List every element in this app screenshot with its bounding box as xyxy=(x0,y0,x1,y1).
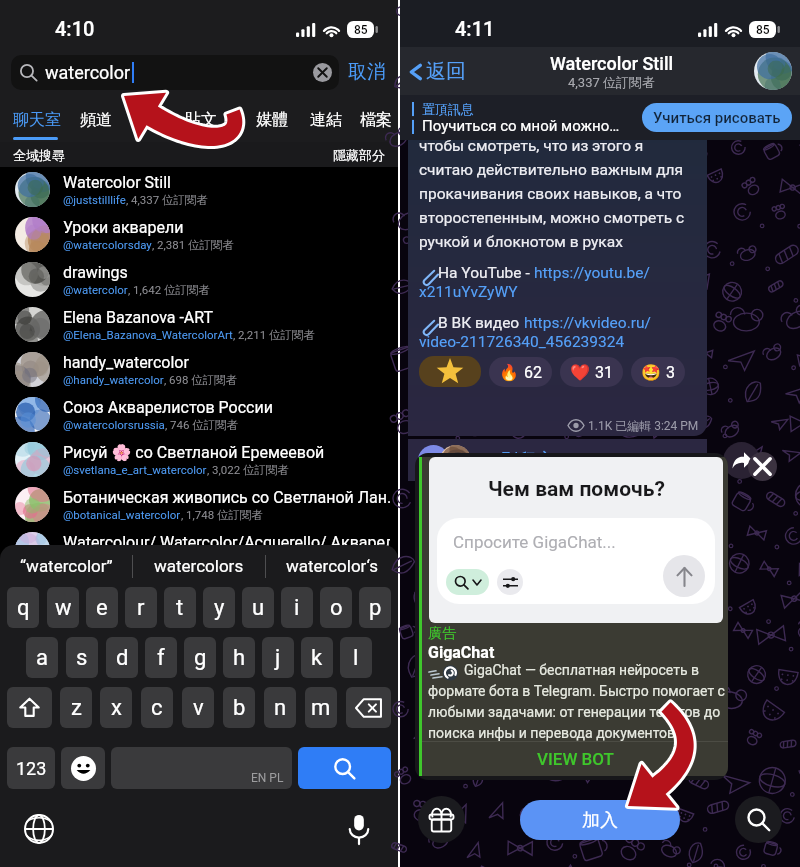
staticText: a xyxy=(36,645,48,671)
button[interactable]: g xyxy=(184,637,216,678)
button[interactable]: Close xyxy=(748,452,777,481)
staticText: e xyxy=(96,595,108,621)
button[interactable]: q xyxy=(7,587,39,628)
button[interactable]: r xyxy=(125,587,157,628)
button[interactable]: 🔥 xyxy=(489,357,552,387)
button[interactable]: watercolor‘s xyxy=(266,545,398,587)
button[interactable]: Settings xyxy=(497,569,523,595)
staticText: Ботаническая живопись со Светланой Лан… xyxy=(63,488,390,507)
staticText: 置頂訊息 xyxy=(422,101,474,117)
button[interactable]: f xyxy=(145,637,177,678)
button[interactable]: Send xyxy=(663,555,705,597)
button[interactable]: 隱藏部分 xyxy=(333,147,385,163)
button[interactable]: Clear xyxy=(313,63,332,82)
button[interactable]: d xyxy=(106,637,138,678)
button[interactable]: Emoji xyxy=(61,747,105,789)
button[interactable]: z xyxy=(60,687,92,728)
button[interactable]: b xyxy=(223,687,255,728)
staticText: @watercolorsday xyxy=(63,238,152,251)
staticText: 85 xyxy=(756,23,770,37)
button[interactable]: Backspace xyxy=(346,687,391,728)
button[interactable]: 返回 xyxy=(408,59,470,84)
button[interactable]: Channel avatar xyxy=(754,52,792,90)
button[interactable]: Search xyxy=(298,747,391,789)
staticText: c xyxy=(151,695,163,721)
button[interactable]: Учиться рисовать xyxy=(642,103,792,132)
button[interactable]: Shift xyxy=(7,687,52,728)
button[interactable]: Gift xyxy=(418,796,465,843)
staticText: Спросите GigaChat... xyxy=(453,532,616,552)
button[interactable]: watercolors xyxy=(133,545,265,587)
staticText: В ВК видео xyxy=(438,314,524,332)
staticText: EN PL xyxy=(251,771,284,785)
button[interactable]: 頻道 xyxy=(79,103,112,142)
button[interactable]: EN PL xyxy=(111,747,292,789)
button[interactable]: watercolor xyxy=(11,55,339,90)
button[interactable] xyxy=(419,356,481,387)
button[interactable]: j xyxy=(262,637,294,678)
button[interactable]: Voice input xyxy=(340,810,378,848)
button[interactable]: u xyxy=(242,587,274,628)
button[interactable]: y xyxy=(203,587,235,628)
button[interactable]: 取消 xyxy=(348,60,386,84)
button[interactable]: m xyxy=(305,687,337,728)
button[interactable]: Рисуй 🌸 со Светланой Еремеевой xyxy=(0,437,398,482)
button[interactable]: 媒體 xyxy=(255,103,288,142)
staticText: n xyxy=(274,695,287,721)
staticText: , 2,211 位訂閱者 xyxy=(233,328,316,342)
button[interactable]: M xyxy=(408,439,707,481)
button[interactable]: “watercolor” xyxy=(0,545,132,587)
button[interactable]: Elena Bazanova -ART xyxy=(0,302,398,347)
button[interactable]: t xyxy=(164,587,196,628)
staticText: 4:11 xyxy=(455,17,495,40)
staticText: d xyxy=(116,645,129,671)
button[interactable]: c xyxy=(141,687,173,728)
button[interactable]: i xyxy=(281,587,313,628)
button[interactable]: p xyxy=(359,587,391,628)
button[interactable] xyxy=(446,569,489,595)
button[interactable]: h xyxy=(223,637,255,678)
button[interactable]: s xyxy=(66,637,98,678)
staticText: 媒體 xyxy=(256,110,288,130)
button[interactable]: VIEW BOT xyxy=(422,742,728,776)
button[interactable]: 貼文 xyxy=(184,103,217,142)
staticText: @botanical_watercolor xyxy=(63,508,181,521)
button[interactable]: 檔案 xyxy=(359,103,392,142)
button[interactable]: Watercolor Still xyxy=(0,167,398,212)
staticText: Elena Bazanova -ART xyxy=(63,308,214,327)
button[interactable]: 連結 xyxy=(309,103,342,142)
button[interactable]: Спросите GigaChat... xyxy=(437,518,715,604)
button[interactable]: v xyxy=(182,687,214,728)
button[interactable]: 123 xyxy=(7,747,55,789)
staticText: v xyxy=(193,695,204,721)
button[interactable]: x xyxy=(100,687,132,728)
button[interactable]: Ботаническая живопись со Светланой Лан… xyxy=(0,482,398,527)
button[interactable]: 🤩 xyxy=(631,357,685,387)
staticText: 3 xyxy=(666,363,675,382)
button[interactable]: o xyxy=(320,587,352,628)
button[interactable]: ❤️ xyxy=(560,357,623,387)
button[interactable]: Союз Акварелистов России xyxy=(0,392,398,437)
staticText: Уроки акварели xyxy=(63,218,184,237)
staticText: , 1,642 位訂閱者 xyxy=(128,283,211,297)
button[interactable]: 聊天室 xyxy=(13,103,61,142)
button[interactable]: 加入 xyxy=(520,800,680,840)
button[interactable]: Search xyxy=(735,796,782,843)
button[interactable]: Share xyxy=(723,442,760,479)
button[interactable]: Watercolour/ Watercolor/Acquerello/ Аква… xyxy=(0,527,398,572)
button[interactable]: Уроки акварели xyxy=(0,212,398,257)
staticText: 85 xyxy=(354,23,368,37)
button[interactable]: Change keyboard xyxy=(20,810,58,848)
button[interactable]: k xyxy=(301,637,333,678)
staticText: Чем вам помочь? xyxy=(488,477,665,502)
button[interactable]: l xyxy=(340,637,372,678)
staticText: 31 xyxy=(595,363,613,382)
staticText: @aquarelle xyxy=(63,553,121,566)
staticText: 連結 xyxy=(310,110,342,130)
button[interactable]: w xyxy=(47,587,79,628)
button[interactable]: a xyxy=(26,637,58,678)
button[interactable]: drawings xyxy=(0,257,398,302)
button[interactable]: n xyxy=(264,687,296,728)
button[interactable]: handy_watercolor xyxy=(0,347,398,392)
button[interactable]: e xyxy=(86,587,118,628)
